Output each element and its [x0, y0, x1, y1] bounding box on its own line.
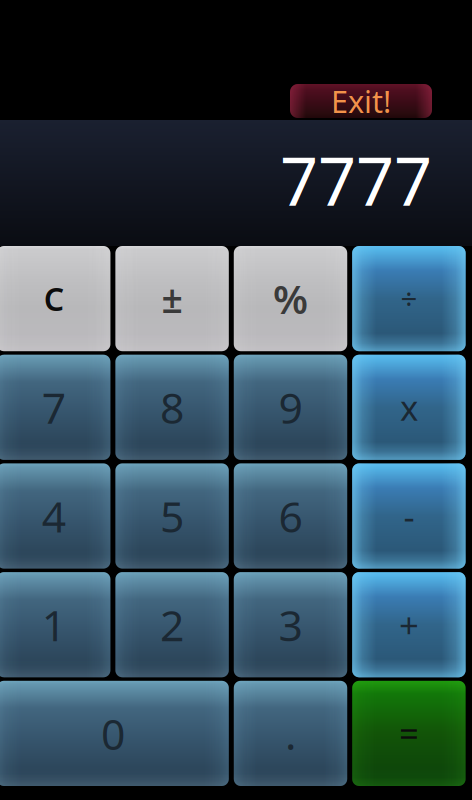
- button[interactable]: .: [234, 681, 347, 786]
- button[interactable]: 8: [115, 355, 229, 460]
- button[interactable]: 2: [115, 572, 229, 677]
- staticText: C: [44, 277, 64, 320]
- button[interactable]: ±: [115, 246, 229, 351]
- staticText: 5: [160, 488, 184, 544]
- button[interactable]: 0: [0, 681, 229, 786]
- button[interactable]: 9: [234, 355, 347, 460]
- staticText: %: [273, 272, 308, 325]
- button[interactable]: 1: [0, 572, 110, 677]
- staticText: 7777: [280, 136, 432, 224]
- button[interactable]: =: [352, 681, 466, 786]
- staticText: 6: [278, 488, 302, 544]
- staticText: =: [399, 710, 419, 756]
- staticText: .: [285, 705, 296, 762]
- staticText: 7: [42, 379, 66, 436]
- button[interactable]: 4: [0, 463, 110, 569]
- staticText: 9: [278, 379, 302, 436]
- button[interactable]: -: [352, 463, 466, 569]
- staticText: 0: [101, 705, 125, 762]
- staticText: Exit!: [331, 81, 391, 121]
- staticText: 8: [160, 379, 184, 436]
- staticText: +: [399, 602, 419, 648]
- staticText: ±: [162, 274, 183, 323]
- staticText: 4: [42, 488, 66, 544]
- button[interactable]: ÷: [352, 246, 466, 351]
- button[interactable]: Exit!: [290, 84, 432, 118]
- button[interactable]: 7: [0, 355, 110, 460]
- staticText: 3: [278, 596, 302, 653]
- button[interactable]: 5: [115, 463, 229, 569]
- staticText: 1: [42, 596, 66, 653]
- button[interactable]: 6: [234, 463, 347, 569]
- staticText: ÷: [400, 279, 417, 318]
- button[interactable]: %: [234, 246, 347, 351]
- button[interactable]: +: [352, 572, 466, 677]
- staticText: -: [403, 493, 414, 539]
- button[interactable]: 3: [234, 572, 347, 677]
- button[interactable]: C: [0, 246, 110, 351]
- staticText: x: [400, 384, 418, 430]
- staticText: 2: [160, 596, 184, 653]
- button[interactable]: x: [352, 355, 466, 460]
